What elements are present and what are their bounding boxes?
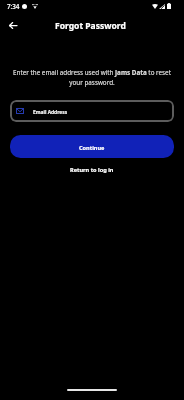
staticText: Forgot Password <box>55 20 126 32</box>
button[interactable]: Email Address <box>10 100 174 122</box>
staticText: Continue <box>79 144 105 152</box>
button[interactable]: Continue <box>10 135 174 158</box>
button[interactable]: Back <box>4 16 22 34</box>
button[interactable]: Return to log in <box>64 163 120 177</box>
staticText: Email Address <box>33 109 68 116</box>
staticText: Return to log in <box>70 166 114 174</box>
staticText: Enter the email address used with Jams D… <box>10 68 174 87</box>
staticText: 7:34 <box>7 2 20 10</box>
